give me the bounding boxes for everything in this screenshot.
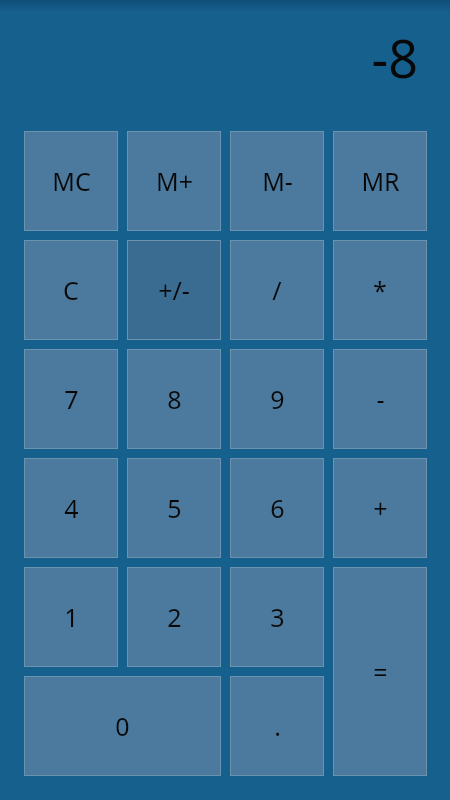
staticText: M- [262, 164, 293, 198]
staticText: +/- [158, 273, 190, 307]
button[interactable]: C [24, 240, 118, 340]
button[interactable]: 4 [24, 458, 118, 558]
staticText: MR [361, 164, 400, 198]
staticText: 8 [167, 382, 182, 416]
button[interactable]: +/- [127, 240, 221, 340]
button[interactable]: 2 [127, 567, 221, 667]
staticText: * [373, 273, 387, 307]
staticText: C [63, 273, 79, 307]
staticText: = [373, 655, 388, 689]
staticText: . [274, 709, 281, 743]
button[interactable]: M+ [127, 131, 221, 231]
staticText: 4 [64, 491, 79, 525]
staticText: 2 [167, 600, 182, 634]
staticText: 5 [167, 491, 182, 525]
button[interactable]: + [333, 458, 427, 558]
button[interactable]: MC [24, 131, 118, 231]
button[interactable]: 5 [127, 458, 221, 558]
staticText: 1 [64, 600, 79, 634]
staticText: + [373, 491, 388, 525]
staticText: 3 [270, 600, 285, 634]
staticText: M+ [156, 164, 193, 198]
button[interactable]: MR [333, 131, 427, 231]
staticText: 6 [270, 491, 285, 525]
staticText: - [376, 382, 385, 416]
button[interactable]: . [230, 676, 324, 776]
button[interactable]: 7 [24, 349, 118, 449]
staticText: MC [52, 164, 91, 198]
button[interactable]: 1 [24, 567, 118, 667]
button[interactable]: / [230, 240, 324, 340]
staticText: 0 [115, 709, 130, 743]
button[interactable]: - [333, 349, 427, 449]
staticText: -8 [371, 22, 418, 93]
button[interactable]: 3 [230, 567, 324, 667]
staticText: 7 [64, 382, 79, 416]
staticText: 9 [270, 382, 285, 416]
button[interactable]: 6 [230, 458, 324, 558]
button[interactable]: = [333, 567, 427, 776]
staticText: / [272, 273, 282, 307]
button[interactable]: 0 [24, 676, 221, 776]
button[interactable]: 9 [230, 349, 324, 449]
button[interactable]: 8 [127, 349, 221, 449]
button[interactable]: M- [230, 131, 324, 231]
button[interactable]: * [333, 240, 427, 340]
